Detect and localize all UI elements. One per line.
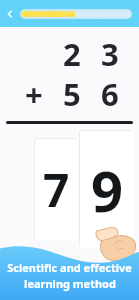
- staticText: 5: [63, 73, 81, 115]
- staticText: 3: [101, 33, 119, 75]
- button[interactable]: 7: [35, 139, 78, 240]
- staticText: 2: [63, 33, 81, 75]
- staticText: +: [25, 73, 43, 115]
- staticText: Scientific and effective: [7, 260, 132, 275]
- staticText: 9: [91, 152, 124, 228]
- button[interactable]: 9: [80, 131, 134, 248]
- staticText: 7: [43, 158, 70, 221]
- button[interactable]: Back: [2, 6, 18, 22]
- staticText: learning method: [24, 276, 116, 291]
- staticText: 6: [101, 73, 119, 115]
